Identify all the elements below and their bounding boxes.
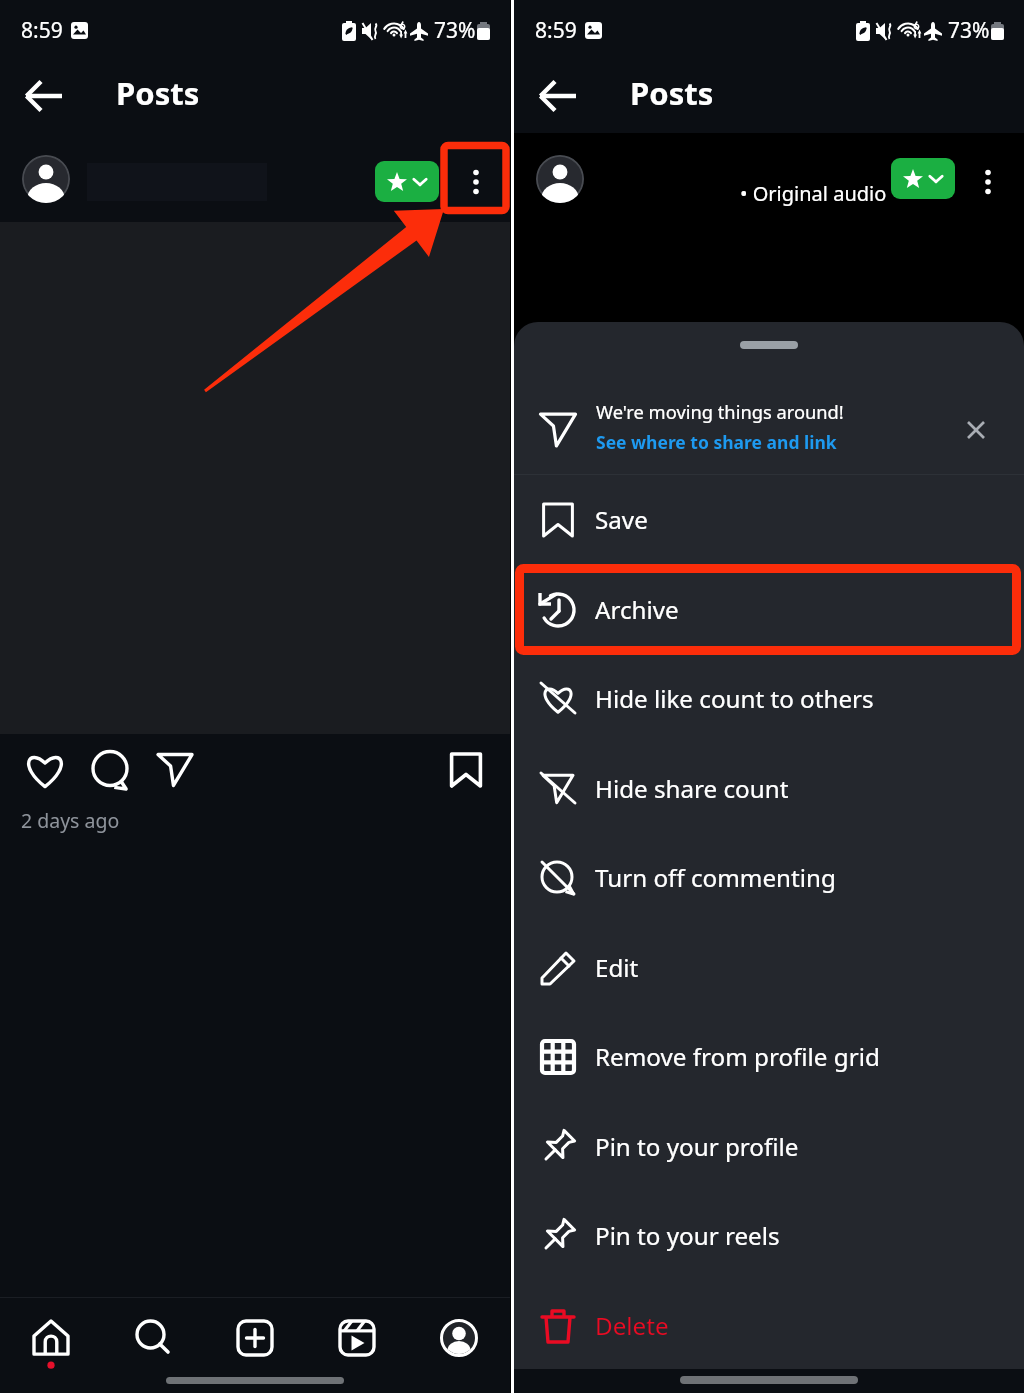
staticText: Archive [595,593,679,626]
button[interactable]: Archive [514,565,1024,654]
staticText: 73% [948,16,990,45]
button[interactable]: Close [952,406,1000,454]
button[interactable]: We're moving things around! [514,384,1024,474]
staticText: Save [595,503,648,536]
button[interactable]: Subscriptions [375,161,439,202]
staticText: We're moving things around! [596,399,844,424]
button[interactable]: Profile picture [536,155,584,203]
button[interactable]: More options [452,157,502,207]
button[interactable]: Edit [514,923,1024,1012]
staticText: Pin to your reels [595,1219,780,1252]
staticText: Remove from profile grid [595,1040,880,1073]
button[interactable]: Back [528,68,588,128]
button[interactable]: Share [148,743,202,797]
button[interactable]: Search [102,1298,204,1378]
staticText: Hide like count to others [595,682,874,715]
staticText: 8:59 [21,16,63,45]
staticText: 73% [434,16,476,45]
button[interactable]: Hide like count to others [514,654,1024,743]
staticText: Posts [116,72,200,114]
staticText: Turn off commenting [595,861,836,894]
button[interactable]: Reels [306,1298,408,1378]
button[interactable]: Save [439,743,493,797]
button[interactable]: Save [514,475,1024,564]
staticText: Posts [630,72,714,114]
button[interactable]: Back [14,68,74,128]
button[interactable]: Subscriptions [891,158,955,199]
staticText: 2 days ago [21,807,120,834]
button[interactable]: Profile [408,1298,510,1378]
button[interactable]: Turn off commenting [514,833,1024,922]
button[interactable]: Delete [514,1281,1024,1369]
button[interactable]: Profile picture [22,155,70,203]
button[interactable]: Create [204,1298,306,1378]
button[interactable]: Comment [83,743,137,797]
staticText: See where to share and link [596,430,837,454]
staticText: Hide share count [595,772,789,805]
button[interactable]: More options [964,157,1014,207]
button[interactable]: Hide share count [514,744,1024,833]
button[interactable]: Home [0,1298,102,1378]
button[interactable]: Pin to your profile [514,1102,1024,1191]
staticText: • Original audio [740,180,887,207]
button[interactable]: Remove from profile grid [514,1012,1024,1101]
staticText: 8:59 [535,16,577,45]
button[interactable]: Pin to your reels [514,1191,1024,1280]
staticText: Pin to your profile [595,1130,799,1163]
button[interactable]: Like [18,743,72,797]
staticText: Edit [595,951,639,984]
staticText: Delete [595,1309,669,1342]
